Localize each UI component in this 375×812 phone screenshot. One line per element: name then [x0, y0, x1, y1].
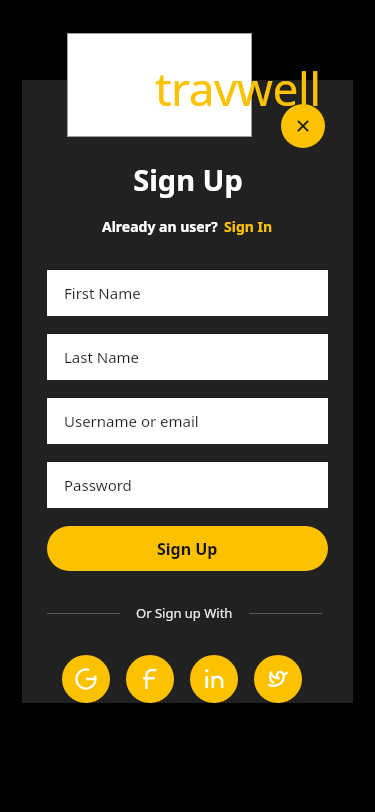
- staticText: Already an user?: [102, 217, 218, 236]
- staticText: Last Name: [64, 347, 140, 367]
- staticText: Sign Up: [133, 160, 243, 199]
- button[interactable]: Sign up with Facebook: [126, 655, 174, 703]
- staticText: travwell: [155, 57, 321, 111]
- button[interactable]: Sign up with Google: [62, 655, 110, 703]
- staticText: Password: [64, 475, 132, 495]
- button[interactable]: Sign Up: [47, 526, 328, 571]
- button[interactable]: First Name: [47, 270, 328, 316]
- staticText: Username or email: [64, 411, 199, 431]
- button[interactable]: Sign up with LinkedIn: [190, 655, 238, 703]
- staticText: Sign In: [224, 217, 273, 236]
- staticText: Or Sign up With: [136, 604, 233, 622]
- button[interactable]: Close: [281, 104, 325, 148]
- button[interactable]: Sign up with Twitter: [254, 655, 302, 703]
- button[interactable]: Last Name: [47, 334, 328, 380]
- button[interactable]: Username or email: [47, 398, 328, 444]
- button[interactable]: Sign In: [224, 217, 273, 236]
- staticText: First Name: [64, 283, 141, 303]
- staticText: Sign Up: [157, 538, 218, 560]
- button[interactable]: Password: [47, 462, 328, 508]
